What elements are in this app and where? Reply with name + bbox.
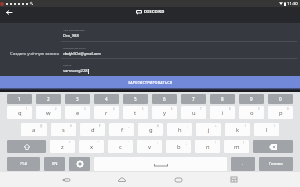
staticText: n [206, 143, 210, 151]
button[interactable]: Settings [69, 157, 90, 171]
button[interactable]: r [94, 106, 119, 119]
staticText: a [32, 126, 36, 134]
button[interactable]: w [36, 106, 61, 119]
staticText: i [222, 109, 224, 117]
button[interactable]: Home [112, 172, 132, 187]
staticText: ) [274, 124, 275, 128]
button[interactable]: . [231, 157, 255, 171]
button[interactable]: Recents [168, 172, 188, 187]
button[interactable]: t [123, 106, 148, 119]
button[interactable]: ?1# [7, 157, 40, 171]
button[interactable]: x [79, 140, 104, 153]
staticText: k [236, 126, 240, 134]
button[interactable]: Shift [7, 140, 46, 153]
button[interactable]: 8 [210, 94, 235, 104]
button[interactable]: p [268, 106, 293, 119]
staticText: 2 [47, 96, 50, 102]
staticText: g [149, 126, 153, 134]
button[interactable]: o [239, 106, 264, 119]
staticText: 8 [221, 96, 224, 102]
staticText: : [157, 141, 158, 145]
staticText: ?1# [20, 161, 27, 167]
staticText: l [266, 126, 268, 134]
staticText: & [157, 124, 159, 128]
staticText: ₽ [99, 124, 101, 128]
button[interactable]: z [50, 140, 75, 153]
staticText: 5 [142, 107, 144, 111]
staticText: 9 [258, 107, 260, 111]
button[interactable]: d [80, 123, 105, 136]
staticText: Пароль [63, 63, 72, 66]
staticText: ! [215, 141, 216, 145]
button[interactable]: ЗАРЕГИСТРИРОВАТЬСЯ [0, 76, 300, 88]
button[interactable]: 5 [123, 94, 148, 104]
button[interactable]: c [108, 140, 133, 153]
button[interactable]: Backspace [253, 140, 293, 153]
button[interactable]: y [152, 106, 177, 119]
button[interactable]: 9 [239, 94, 264, 104]
button[interactable]: g [138, 123, 163, 136]
staticText: vladyh5Oct@gmail.com [63, 51, 101, 56]
button[interactable]: 0 [268, 94, 293, 104]
staticText: 3 [84, 107, 86, 111]
staticText: j [208, 126, 210, 134]
staticText: ? [243, 141, 245, 145]
staticText: Электронная почта [63, 46, 86, 49]
button[interactable]: 7 [181, 94, 206, 104]
button[interactable]: Multi window [224, 172, 244, 187]
button[interactable]: l [254, 123, 279, 136]
button[interactable]: v [137, 140, 162, 153]
staticText: 5 [134, 96, 137, 102]
staticText: ( [245, 124, 246, 128]
button[interactable] [94, 157, 227, 171]
button[interactable]: Back [3, 7, 14, 18]
staticText: d [91, 126, 95, 134]
button[interactable]: n [195, 140, 220, 153]
staticText: 6 [171, 107, 173, 111]
staticText: c [119, 143, 122, 151]
button[interactable]: 1 [7, 94, 32, 104]
staticText: 0 [287, 107, 289, 111]
staticText: 1 [18, 96, 21, 102]
staticText: # [70, 124, 72, 128]
staticText: q [18, 109, 22, 117]
button[interactable]: e [65, 106, 90, 119]
button[interactable]: u [181, 106, 206, 119]
staticText: u [192, 109, 196, 117]
button[interactable]: b [166, 140, 191, 153]
staticText: _ [128, 124, 130, 128]
staticText: " [98, 141, 100, 145]
staticText: 0 [279, 96, 282, 102]
staticText: o [250, 109, 254, 117]
button[interactable]: Готово [259, 157, 293, 171]
staticText: @ [40, 124, 43, 128]
staticText: 1 [26, 107, 28, 111]
staticText: r [105, 109, 108, 117]
staticText: b [177, 143, 181, 151]
staticText: EN [52, 161, 58, 167]
staticText: x [90, 143, 94, 151]
button[interactable]: s [51, 123, 76, 136]
button[interactable]: EN [44, 157, 65, 171]
staticText: Dra_988 [63, 33, 79, 39]
button[interactable]: f [109, 123, 134, 136]
button[interactable]: 6 [152, 94, 177, 104]
staticText: + [215, 124, 217, 128]
button[interactable]: Имя пользователя [61, 28, 297, 42]
staticText: s [62, 126, 65, 134]
button[interactable]: 2 [36, 94, 61, 104]
button[interactable]: k [225, 123, 250, 136]
button[interactable]: Back [56, 172, 76, 187]
button[interactable]: m [224, 140, 249, 153]
button[interactable]: q [7, 106, 32, 119]
button[interactable]: j [196, 123, 221, 136]
button[interactable]: Электронная почта [61, 46, 297, 59]
staticText: . [242, 161, 244, 167]
button[interactable]: 3 [65, 94, 90, 104]
button[interactable]: h [167, 123, 192, 136]
staticText: f [121, 126, 123, 134]
button[interactable]: a [21, 123, 47, 136]
button[interactable]: Пароль [61, 63, 297, 77]
button[interactable]: 4 [94, 94, 119, 104]
button[interactable]: i [210, 106, 235, 119]
